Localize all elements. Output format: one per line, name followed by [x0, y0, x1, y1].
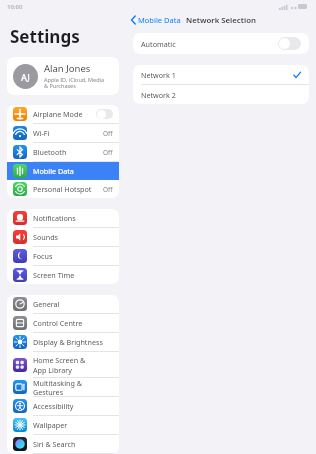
button[interactable]: Mobile Data [7, 162, 119, 180]
button[interactable]: Siri & Search [7, 435, 119, 454]
button[interactable]: Notifications [7, 209, 119, 228]
button[interactable]: Automatic [133, 33, 309, 54]
button[interactable]: Multitasking & Gestures [7, 378, 119, 397]
staticText: Apple ID, iCloud, Media & Purchases [44, 76, 105, 90]
button[interactable]: Screen Time [7, 266, 119, 284]
button[interactable]: Automatic toggle [278, 37, 301, 50]
button[interactable]: Control Centre [7, 314, 119, 333]
staticText: Accessibility [33, 401, 74, 411]
staticText: Focus [33, 251, 53, 261]
staticText: Screen Time [33, 270, 75, 280]
staticText: General [33, 299, 60, 309]
staticText: App Library [33, 365, 72, 375]
staticText: Notifications [33, 213, 76, 223]
button[interactable]: Wallpaper [7, 416, 119, 435]
staticText: Off [103, 129, 113, 138]
button[interactable]: Network 2 [133, 85, 309, 104]
button[interactable]: Airplane Mode [7, 105, 119, 124]
staticText: Wi-Fi [33, 128, 50, 138]
staticText: 10:00 [7, 3, 23, 11]
staticText: Alan Jones [44, 62, 91, 75]
button[interactable]: Home Screen & [7, 352, 119, 378]
staticText: Personal Hotspot [33, 184, 92, 194]
button[interactable]: AJ [7, 57, 119, 95]
button[interactable]: Personal Hotspot [7, 180, 119, 198]
staticText: Automatic [141, 39, 176, 49]
staticText: Mobile Data [33, 166, 74, 176]
staticText: Network 2 [141, 90, 176, 100]
button[interactable]: General [7, 295, 119, 314]
button[interactable]: Focus [7, 247, 119, 266]
button[interactable]: Mobile Data [126, 11, 185, 29]
staticText: Network Selection [186, 15, 256, 26]
staticText: Sounds [33, 232, 59, 242]
staticText: Bluetooth [33, 147, 67, 157]
staticText: Network 1 [141, 70, 176, 80]
staticText: Off [103, 185, 113, 194]
staticText: Mobile Data [138, 15, 181, 25]
staticText: AJ [21, 71, 30, 83]
button[interactable]: Accessibility [7, 397, 119, 416]
button[interactable]: Network 1 [133, 65, 309, 84]
staticText: Multitasking & Gestures [33, 378, 113, 396]
staticText: Control Centre [33, 318, 83, 328]
staticText: Wallpaper [33, 420, 68, 430]
button[interactable]: Wi-Fi [7, 124, 119, 143]
staticText: Airplane Mode [33, 109, 83, 119]
staticText: Off [103, 148, 113, 157]
staticText: Home Screen & [33, 355, 86, 365]
staticText: Siri & Search [33, 439, 76, 449]
button[interactable]: Airplane Mode toggle [96, 109, 113, 119]
staticText: Settings [10, 25, 80, 48]
button[interactable]: Sounds [7, 228, 119, 247]
staticText: Display & Brightness [33, 337, 103, 347]
button[interactable]: Bluetooth [7, 143, 119, 162]
button[interactable]: Display & Brightness [7, 333, 119, 352]
